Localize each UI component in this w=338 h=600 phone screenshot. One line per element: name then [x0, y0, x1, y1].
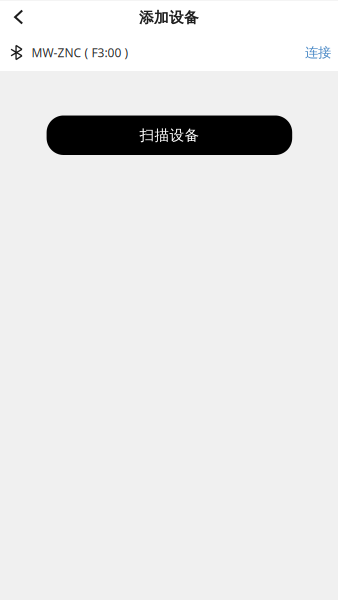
button[interactable]: 连接: [295, 34, 338, 71]
staticText: MW-ZNC ( F3:00 ): [31, 44, 128, 60]
staticText: 扫描设备: [139, 126, 199, 144]
button[interactable]: 返回: [0, 0, 35, 34]
button[interactable]: 扫描设备: [47, 115, 292, 155]
staticText: 添加设备: [139, 8, 199, 26]
button[interactable]: MW-ZNC ( F3:00 ): [0, 34, 295, 71]
staticText: 连接: [305, 44, 331, 61]
